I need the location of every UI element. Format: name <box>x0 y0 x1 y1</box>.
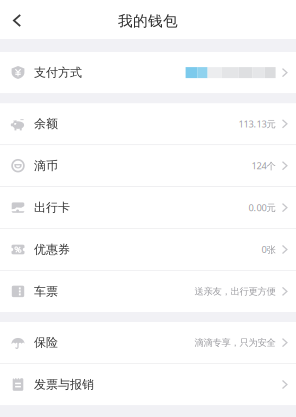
button[interactable]: 出行卡 <box>0 187 296 228</box>
staticText: 0张 <box>262 243 276 256</box>
staticText: 滴滴专享，只为安全 <box>195 337 276 348</box>
button[interactable]: 支付方式 <box>0 52 296 93</box>
button[interactable]: 滴币 <box>0 145 296 186</box>
staticText: 0.00元 <box>249 201 276 214</box>
staticText: 发票与报销 <box>34 377 94 392</box>
staticText: 出行卡 <box>34 200 70 215</box>
staticText: 124个 <box>252 159 276 172</box>
staticText: 113.13元 <box>239 118 276 130</box>
staticText: 支付方式 <box>34 65 82 80</box>
staticText: 优惠券 <box>34 242 70 257</box>
staticText: 余额 <box>34 116 58 131</box>
staticText: 滴币 <box>34 158 58 173</box>
staticText: 保险 <box>34 335 58 350</box>
button[interactable]: 车票 <box>0 271 296 312</box>
button[interactable]: Back <box>0 0 35 39</box>
staticText: 车票 <box>34 284 58 299</box>
staticText: 我的钱包 <box>118 12 178 30</box>
button[interactable]: 保险 <box>0 322 296 363</box>
button[interactable]: 余额 <box>0 103 296 144</box>
button[interactable]: 发票与报销 <box>0 364 296 405</box>
button[interactable]: 优惠券 <box>0 229 296 270</box>
staticText: 送亲友，出行更方便 <box>195 286 276 297</box>
